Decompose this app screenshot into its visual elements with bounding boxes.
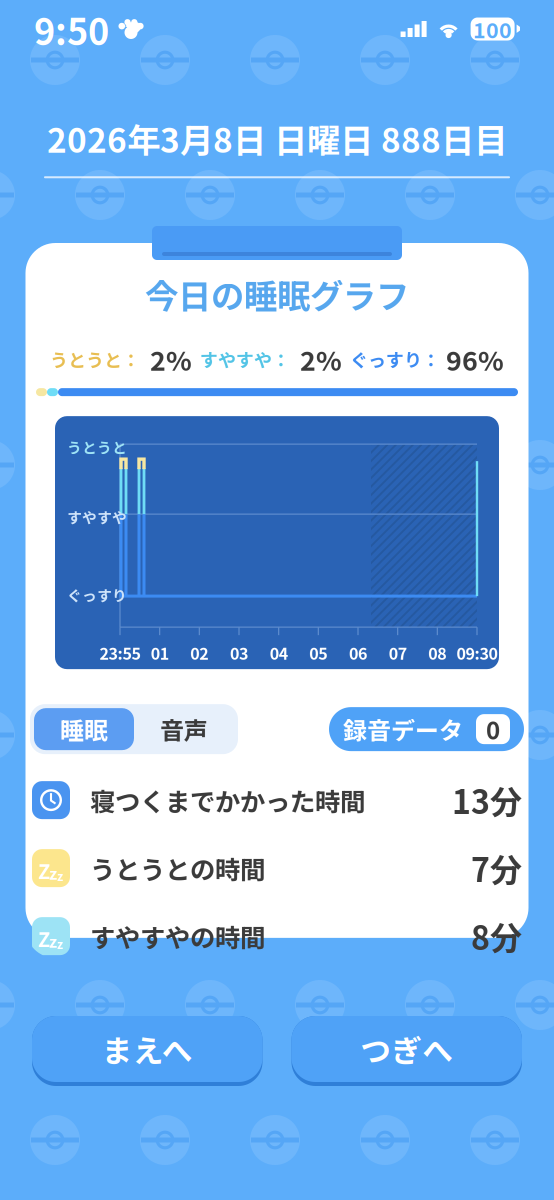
- staticText: うとうとの時間: [90, 850, 265, 886]
- staticText: 96%: [446, 340, 504, 378]
- staticText: すやすや: [67, 506, 127, 527]
- button[interactable]: まえへ: [32, 1016, 262, 1086]
- staticText: 05: [309, 641, 327, 664]
- staticText: 8分: [471, 913, 522, 959]
- staticText: 23:55: [99, 641, 140, 664]
- staticText: ぐっすり: [67, 584, 127, 605]
- button[interactable]: Z: [32, 834, 522, 902]
- staticText: 2%: [150, 340, 192, 378]
- staticText: z: [57, 867, 63, 884]
- staticText: 100: [473, 14, 512, 44]
- staticText: 7分: [471, 845, 522, 891]
- staticText: 睡眠: [60, 712, 108, 747]
- staticText: 02: [190, 641, 208, 664]
- staticText: 13分: [452, 777, 522, 823]
- staticText: 2%: [300, 340, 342, 378]
- staticText: 03: [230, 641, 248, 664]
- staticText: Z: [38, 924, 50, 953]
- staticText: 08: [428, 641, 446, 664]
- staticText: 01: [151, 641, 169, 664]
- staticText: 07: [389, 641, 407, 664]
- staticText: z: [57, 935, 63, 952]
- button[interactable]: 音声: [134, 708, 234, 750]
- staticText: 9:50: [34, 3, 109, 55]
- staticText: 今日の睡眠グラフ: [145, 270, 409, 318]
- button[interactable]: 寝つくまでかかった時間: [32, 766, 522, 834]
- button[interactable]: Z: [32, 902, 522, 970]
- staticText: うとうと: [67, 436, 127, 457]
- button[interactable]: 録音データ: [329, 707, 524, 751]
- button[interactable]: 睡眠: [34, 708, 134, 750]
- staticText: ぐっすり：: [350, 346, 440, 372]
- staticText: 09:30: [456, 641, 497, 664]
- staticText: z: [49, 861, 57, 884]
- staticText: 音声: [160, 712, 208, 747]
- staticText: Z: [38, 856, 50, 885]
- staticText: 0: [486, 712, 500, 747]
- staticText: うとうと：: [50, 346, 140, 372]
- staticText: つぎへ: [360, 1027, 453, 1071]
- staticText: 録音データ: [343, 712, 463, 747]
- staticText: まえへ: [102, 1027, 193, 1071]
- staticText: 2026年3月8日 日曜日 888日目: [47, 114, 507, 162]
- staticText: すやすやの時間: [90, 918, 265, 954]
- staticText: 寝つくまでかかった時間: [90, 782, 365, 818]
- staticText: すやすや：: [200, 346, 290, 372]
- staticText: 04: [270, 641, 288, 664]
- staticText: 06: [349, 641, 367, 664]
- button[interactable]: つぎへ: [291, 1016, 522, 1086]
- staticText: z: [49, 929, 57, 952]
